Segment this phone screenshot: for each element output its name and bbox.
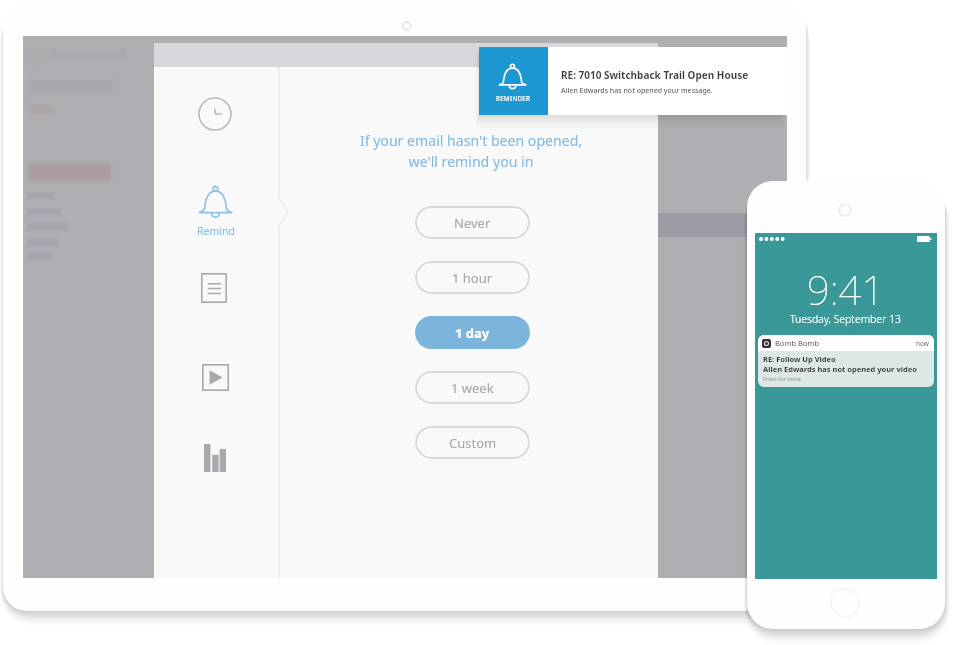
- staticText: REMINDER: [496, 94, 531, 102]
- staticText: Bomb Bomb: [775, 338, 820, 348]
- staticText: 9:41: [807, 262, 885, 316]
- button[interactable]: 1 hour: [415, 261, 530, 294]
- button[interactable]: Remind: [194, 186, 237, 238]
- staticText: Remind: [197, 224, 235, 238]
- staticText: 1 day: [455, 324, 490, 342]
- button[interactable]: Schedule send: [198, 97, 232, 131]
- button[interactable]: 1 week: [415, 371, 530, 404]
- button[interactable]: REMINDER: [479, 47, 787, 115]
- staticText: Press for more: [763, 375, 801, 382]
- button[interactable]: Never: [415, 206, 530, 239]
- button[interactable]: Video: [196, 358, 234, 396]
- staticText: now: [916, 339, 929, 348]
- staticText: 1 hour: [452, 269, 493, 287]
- button[interactable]: Analytics: [196, 439, 234, 477]
- staticText: If your email hasn't been opened, we'll …: [282, 131, 660, 172]
- staticText: Never: [454, 214, 491, 232]
- staticText: RE: 7010 Switchback Trail Open House: [561, 68, 749, 82]
- button[interactable]: Bomb Bomb: [758, 335, 934, 387]
- button[interactable]: 1 day: [415, 316, 530, 349]
- staticText: RE: Follow Up Video: [763, 354, 836, 364]
- staticText: 1 week: [451, 379, 494, 397]
- staticText: Tuesday, September 13: [790, 312, 902, 326]
- staticText: Allen Edwards has not opened your video: [763, 364, 917, 374]
- button[interactable]: Custom: [415, 426, 530, 459]
- staticText: Allen Edwards has not opened your messag…: [561, 86, 713, 96]
- staticText: Custom: [449, 434, 497, 452]
- button[interactable]: Script: [195, 269, 233, 307]
